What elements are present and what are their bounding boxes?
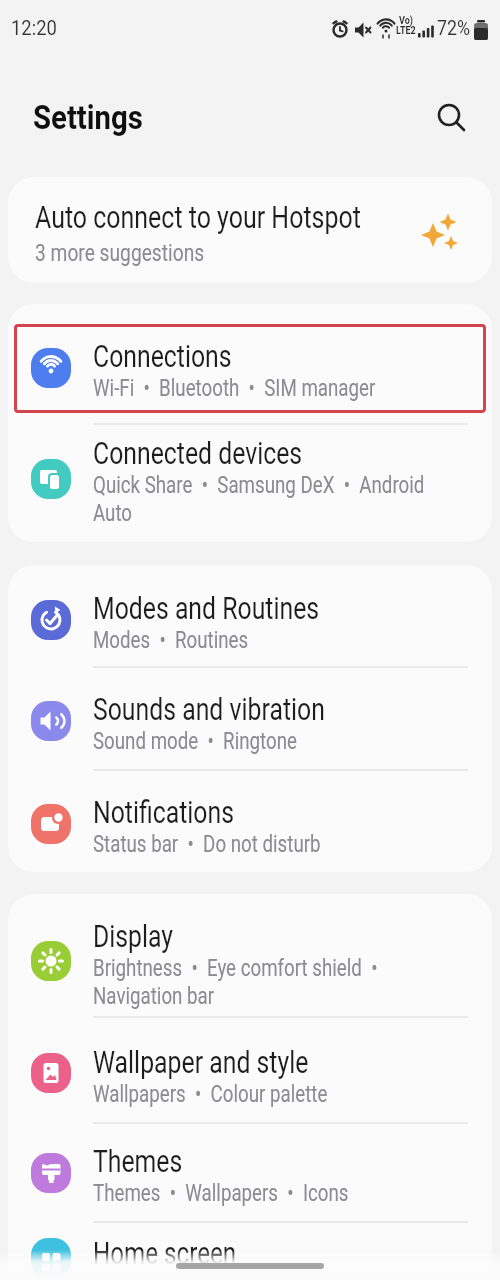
- staticText: Status bar • Do not disturb: [93, 830, 321, 858]
- staticText: Modes and Routines: [93, 590, 319, 626]
- staticText: Navigation bar: [93, 982, 215, 1010]
- button[interactable]: Home screen: [8, 1223, 492, 1280]
- button[interactable]: Wallpaper and style: [8, 1021, 492, 1125]
- button[interactable]: Auto connect to your Hotspot: [8, 177, 492, 283]
- staticText: 3 more suggestions: [35, 239, 205, 267]
- staticText: Themes • Wallpapers • Icons: [93, 1179, 349, 1207]
- button[interactable]: Connections: [8, 308, 492, 427]
- staticText: Auto connect to your Hotspot: [35, 199, 361, 235]
- staticText: Quick Share • Samsung DeX • Android: [93, 471, 424, 499]
- staticText: Themes: [93, 1143, 183, 1179]
- staticText: Brightness • Eye comfort shield •: [93, 954, 378, 982]
- staticText: Connected devices: [93, 435, 303, 471]
- staticText: Modes • Routines: [93, 626, 248, 654]
- staticText: Settings: [33, 98, 143, 137]
- staticText: Display: [93, 918, 174, 954]
- button[interactable]: Notifications: [8, 773, 492, 872]
- button[interactable]: [430, 96, 474, 140]
- staticText: Wi-Fi • Bluetooth • SIM manager: [93, 374, 375, 402]
- staticText: 12:20: [11, 16, 57, 39]
- staticText: Wallpaper and style: [93, 1044, 309, 1080]
- button[interactable]: Connected devices: [8, 420, 492, 537]
- staticText: Home screen: [93, 1235, 236, 1271]
- button[interactable]: Display: [8, 900, 492, 1022]
- staticText: Notifications: [93, 794, 235, 830]
- staticText: Sound mode • Ringtone: [93, 727, 297, 755]
- staticText: Wallpapers • Colour palette: [93, 1080, 328, 1108]
- staticText: Sounds and vibration: [93, 691, 325, 727]
- staticText: LTE2: [396, 25, 416, 37]
- staticText: Auto: [93, 499, 133, 527]
- button[interactable]: Sounds and vibration: [8, 670, 492, 771]
- staticText: 72%: [437, 16, 471, 39]
- button[interactable]: Themes: [8, 1124, 492, 1221]
- staticText: Connections: [93, 338, 232, 374]
- button[interactable]: Modes and Routines: [8, 569, 492, 670]
- staticText: Vo): [399, 15, 413, 27]
